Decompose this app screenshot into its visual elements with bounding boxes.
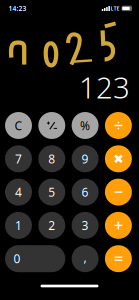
button[interactable]: 7 bbox=[5, 145, 32, 172]
button[interactable]: 0 bbox=[5, 245, 65, 272]
button[interactable]: 3 bbox=[72, 212, 99, 239]
staticText: LTE bbox=[110, 5, 119, 12]
staticText: 0 bbox=[13, 251, 20, 267]
button[interactable]: 6 bbox=[72, 179, 99, 206]
staticText: 14:23 bbox=[8, 4, 26, 13]
staticText: 3 bbox=[82, 217, 89, 233]
staticText: C bbox=[14, 117, 22, 133]
button[interactable]: Minus bbox=[105, 179, 132, 206]
button[interactable]: Plus minus bbox=[38, 112, 65, 139]
button[interactable]: 2 bbox=[38, 212, 65, 239]
button[interactable]: Plus bbox=[105, 212, 132, 239]
staticText: 1 bbox=[15, 217, 22, 233]
button[interactable]: Equals bbox=[105, 245, 132, 272]
button[interactable]: 1 bbox=[5, 212, 32, 239]
staticText: % bbox=[80, 117, 90, 133]
staticText: 5 bbox=[48, 184, 55, 200]
button[interactable]: 5 bbox=[38, 179, 65, 206]
button[interactable]: 9 bbox=[72, 145, 99, 172]
button[interactable]: Divide bbox=[105, 112, 132, 139]
button[interactable]: 4 bbox=[5, 179, 32, 206]
button[interactable]: 8 bbox=[38, 145, 65, 172]
staticText: 123 bbox=[79, 67, 130, 106]
staticText: , bbox=[84, 249, 87, 265]
button[interactable]: C bbox=[5, 112, 32, 139]
staticText: 6 bbox=[82, 184, 89, 200]
staticText: 2 bbox=[48, 217, 55, 233]
button[interactable]: Multiply bbox=[105, 145, 132, 172]
staticText: 7 bbox=[15, 151, 22, 167]
button[interactable]: , bbox=[72, 245, 99, 272]
staticText: 4 bbox=[15, 184, 22, 200]
staticText: 8 bbox=[48, 151, 55, 167]
staticText: 9 bbox=[82, 151, 89, 167]
button[interactable]: % bbox=[72, 112, 99, 139]
